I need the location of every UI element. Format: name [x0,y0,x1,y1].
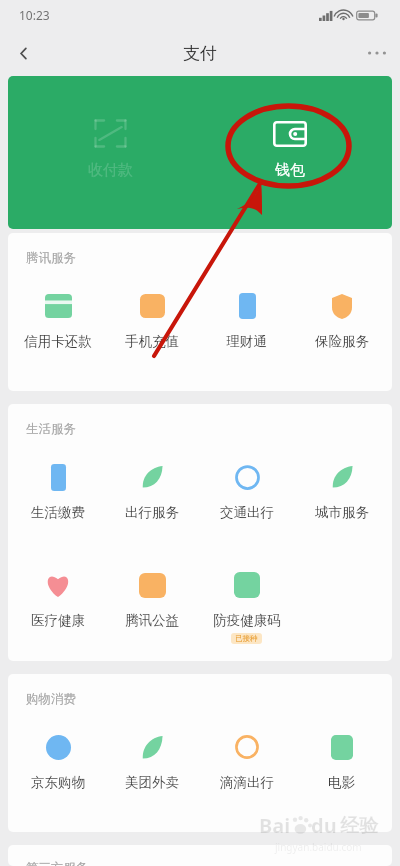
staticText: 生活缴费 [31,504,85,521]
staticText: du [311,812,337,839]
staticText: 腾讯服务 [26,250,76,266]
button[interactable]: More options [354,30,400,76]
staticText: 已接种 [235,634,258,643]
button[interactable]: 京东购物 [11,707,105,820]
staticText: 出行服务 [125,504,179,521]
staticText: 10:23 [19,7,50,23]
staticText: 第三方服务 [26,860,89,866]
button[interactable]: 交通出行 [199,437,294,545]
staticText: 防疫健康码 [213,612,281,629]
staticText: 保险服务 [315,333,369,350]
button[interactable]: 手机充值 [105,266,199,379]
button[interactable]: 理财通 [199,266,294,379]
button[interactable]: 电影 [294,707,389,820]
staticText: 理财通 [226,333,267,350]
staticText: 购物消费 [26,691,76,707]
button[interactable]: 医疗健康 [11,545,105,653]
staticText: 城市服务 [315,504,369,521]
button[interactable]: 防疫健康码 [199,545,294,653]
button[interactable]: 滴滴出行 [199,707,294,820]
button[interactable]: 出行服务 [105,437,199,545]
staticText: 手机充值 [125,333,179,350]
staticText: 美团外卖 [125,774,179,791]
button[interactable]: 保险服务 [294,266,389,379]
staticText: 信用卡还款 [24,333,92,350]
staticText: 收付款 [88,161,133,180]
staticText: Bai [259,812,291,839]
button[interactable]: 生活缴费 [11,437,105,545]
staticText: 电影 [328,774,355,791]
button[interactable]: 腾讯公益 [105,545,199,653]
button[interactable]: 城市服务 [294,437,389,545]
button[interactable]: 收付款 [20,76,200,229]
staticText: 生活服务 [26,421,76,437]
staticText: 钱包 [275,161,305,180]
staticText: 京东购物 [31,774,85,791]
staticText: 医疗健康 [31,612,85,629]
staticText: 滴滴出行 [220,774,274,791]
button[interactable]: 钱包 [200,76,380,229]
staticText: jingyan.baidu.com [275,840,362,854]
staticText: 交通出行 [220,504,274,521]
staticText: 经验 [340,814,378,838]
button[interactable]: 信用卡还款 [11,266,105,379]
staticText: 腾讯公益 [125,612,179,629]
button[interactable]: Back [0,30,46,76]
button[interactable]: 美团外卖 [105,707,199,820]
staticText: 支付 [183,43,217,64]
